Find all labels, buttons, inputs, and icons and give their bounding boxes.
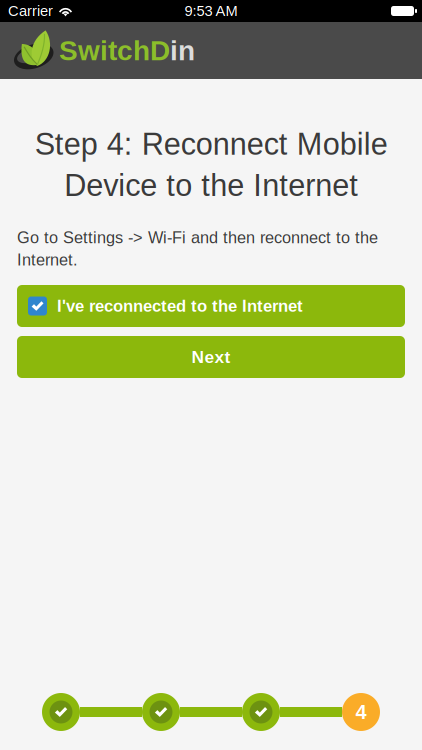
staticText: Carrier (8, 3, 53, 19)
staticText: 9:53 AM (184, 3, 237, 19)
button[interactable]: Next (17, 336, 405, 378)
staticText: in (170, 35, 195, 66)
staticText: 4 (355, 701, 366, 723)
staticText: Switch (59, 35, 150, 66)
staticText: Step 4: Reconnect Mobile Device to the I… (34, 127, 387, 202)
staticText: Go to Settings -> Wi-Fi and then reconne… (17, 228, 378, 269)
staticText: I've reconnected to the Internet (57, 297, 303, 315)
staticText: Next (191, 347, 230, 367)
staticText: D (150, 35, 170, 66)
button[interactable]: I've reconnected to the Internet (17, 285, 405, 327)
